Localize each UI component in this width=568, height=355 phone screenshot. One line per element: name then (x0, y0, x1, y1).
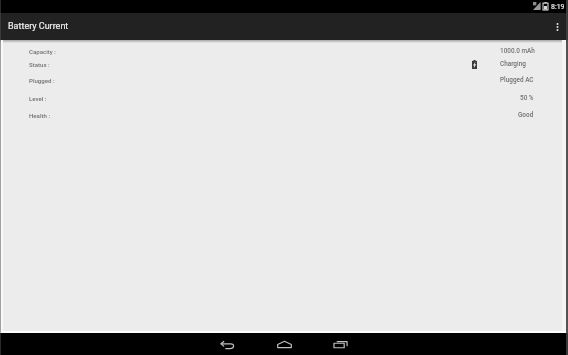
staticText: Battery Current (8, 21, 69, 32)
staticText: Plugged : (29, 77, 55, 84)
button[interactable]: Home (267, 333, 301, 355)
staticText: 1000.0 mAh (500, 47, 535, 55)
staticText: Level : (29, 95, 47, 102)
staticText: Capacity : (29, 48, 56, 55)
staticText: Status : (29, 61, 50, 68)
button[interactable]: Back (210, 333, 244, 355)
staticText: 8:19 (551, 3, 565, 11)
staticText: Health : (29, 112, 51, 119)
button[interactable]: Health : (0, 107, 568, 123)
button[interactable]: Status : (0, 56, 568, 72)
button[interactable]: Plugged : (0, 72, 568, 88)
staticText: 50 % (520, 94, 534, 102)
button[interactable]: More options (546, 13, 568, 40)
button[interactable]: Recent apps (324, 333, 358, 355)
button[interactable]: Capacity : (0, 43, 568, 59)
staticText: Charging (500, 60, 526, 68)
staticText: Plugged AC (500, 76, 534, 84)
button[interactable]: Level : (0, 90, 568, 106)
staticText: Good (518, 111, 534, 119)
